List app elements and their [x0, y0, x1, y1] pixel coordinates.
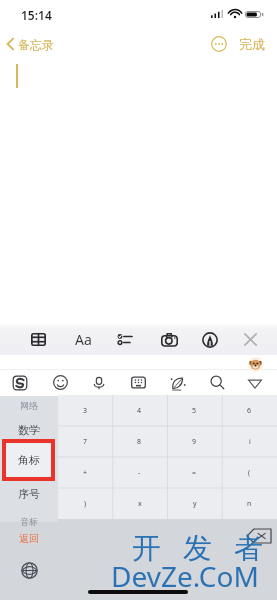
button[interactable]: Sogou input	[5, 369, 35, 396]
button[interactable]: 备忘录	[6, 33, 54, 55]
button[interactable]: 7	[58, 426, 112, 457]
staticText: n	[247, 499, 252, 509]
staticText: 15:14	[21, 7, 52, 23]
staticText: y	[193, 499, 197, 509]
staticText: 5	[192, 406, 197, 416]
staticText: (	[248, 468, 251, 478]
staticText: x	[138, 499, 142, 509]
button[interactable]: Checklist	[108, 324, 140, 355]
button[interactable]: )	[58, 488, 112, 519]
button[interactable]: Voice input	[84, 369, 114, 396]
staticText: 音标	[20, 516, 38, 527]
button[interactable]: Emoji	[45, 369, 75, 396]
button[interactable]: Switch input language	[18, 559, 40, 581]
button[interactable]: 8	[112, 426, 167, 457]
staticText: =	[192, 468, 197, 478]
staticText: 网络	[20, 400, 38, 411]
button[interactable]: Hide keyboard	[240, 369, 270, 396]
button[interactable]: +	[58, 457, 112, 488]
button[interactable]: 序号	[0, 485, 58, 503]
button[interactable]: Handwriting	[163, 369, 193, 396]
button[interactable]: n	[222, 488, 277, 519]
button[interactable]: Keyboard layout	[123, 369, 153, 396]
staticText: )	[84, 499, 87, 509]
button[interactable]: y	[167, 488, 222, 519]
button[interactable]: 3	[58, 395, 112, 426]
button[interactable]: x	[112, 488, 167, 519]
staticText: 序号	[18, 487, 40, 501]
staticText: 6	[247, 406, 252, 416]
button[interactable]: i	[222, 426, 277, 457]
staticText: 角标	[18, 453, 40, 467]
button[interactable]: =	[167, 457, 222, 488]
staticText: -	[138, 468, 141, 478]
button[interactable]: Markup	[194, 324, 226, 355]
button[interactable]: 角标	[2, 439, 55, 481]
staticText: 7	[83, 437, 88, 447]
button[interactable]: 音标	[0, 512, 58, 530]
staticText: 开发者	[121, 530, 274, 567]
button[interactable]: 4	[112, 395, 167, 426]
staticText: i	[249, 437, 251, 447]
button[interactable]: 网络	[0, 396, 58, 414]
staticText: 9	[192, 437, 197, 447]
button[interactable]: 返回	[0, 529, 58, 547]
staticText: DevZe.CoM	[111, 557, 259, 595]
button[interactable]: More options	[211, 36, 227, 52]
staticText: 3	[83, 406, 88, 416]
button[interactable]: 数学	[0, 421, 58, 439]
button[interactable]: Aa	[68, 324, 98, 355]
button[interactable]: -	[112, 457, 167, 488]
staticText: 数学	[18, 423, 40, 437]
button[interactable]: 6	[222, 395, 277, 426]
button[interactable]: 完成	[239, 36, 265, 52]
staticText: +	[83, 468, 88, 478]
button[interactable]: 9	[167, 426, 222, 457]
button[interactable]: Search	[202, 369, 232, 396]
button[interactable]: Close keyboard	[234, 324, 266, 355]
button[interactable]: (	[222, 457, 277, 488]
button[interactable]: Table	[22, 324, 54, 355]
staticText: 8	[137, 437, 142, 447]
staticText: 备忘录	[18, 37, 54, 52]
button[interactable]: Camera	[153, 324, 185, 355]
staticText: 返回	[19, 532, 39, 545]
staticText: 4	[137, 406, 142, 416]
button[interactable]: 5	[167, 395, 222, 426]
staticText: Aa	[75, 330, 92, 349]
